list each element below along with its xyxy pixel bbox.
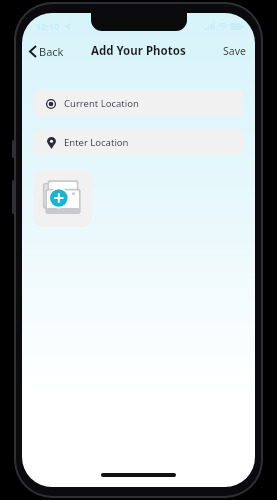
staticText: Add Your Photos bbox=[91, 43, 186, 59]
button[interactable]: Current Location bbox=[34, 90, 243, 116]
staticText: Current Location bbox=[64, 97, 139, 110]
button[interactable]: Enter Location bbox=[34, 129, 243, 155]
button[interactable]: Save bbox=[214, 41, 255, 61]
staticText: 12:10 bbox=[36, 20, 60, 32]
staticText: Save bbox=[223, 44, 246, 58]
button[interactable]: Back bbox=[22, 41, 72, 62]
button[interactable]: Add photos bbox=[34, 169, 92, 227]
staticText: Back bbox=[39, 44, 64, 59]
staticText: Enter Location bbox=[64, 136, 129, 149]
